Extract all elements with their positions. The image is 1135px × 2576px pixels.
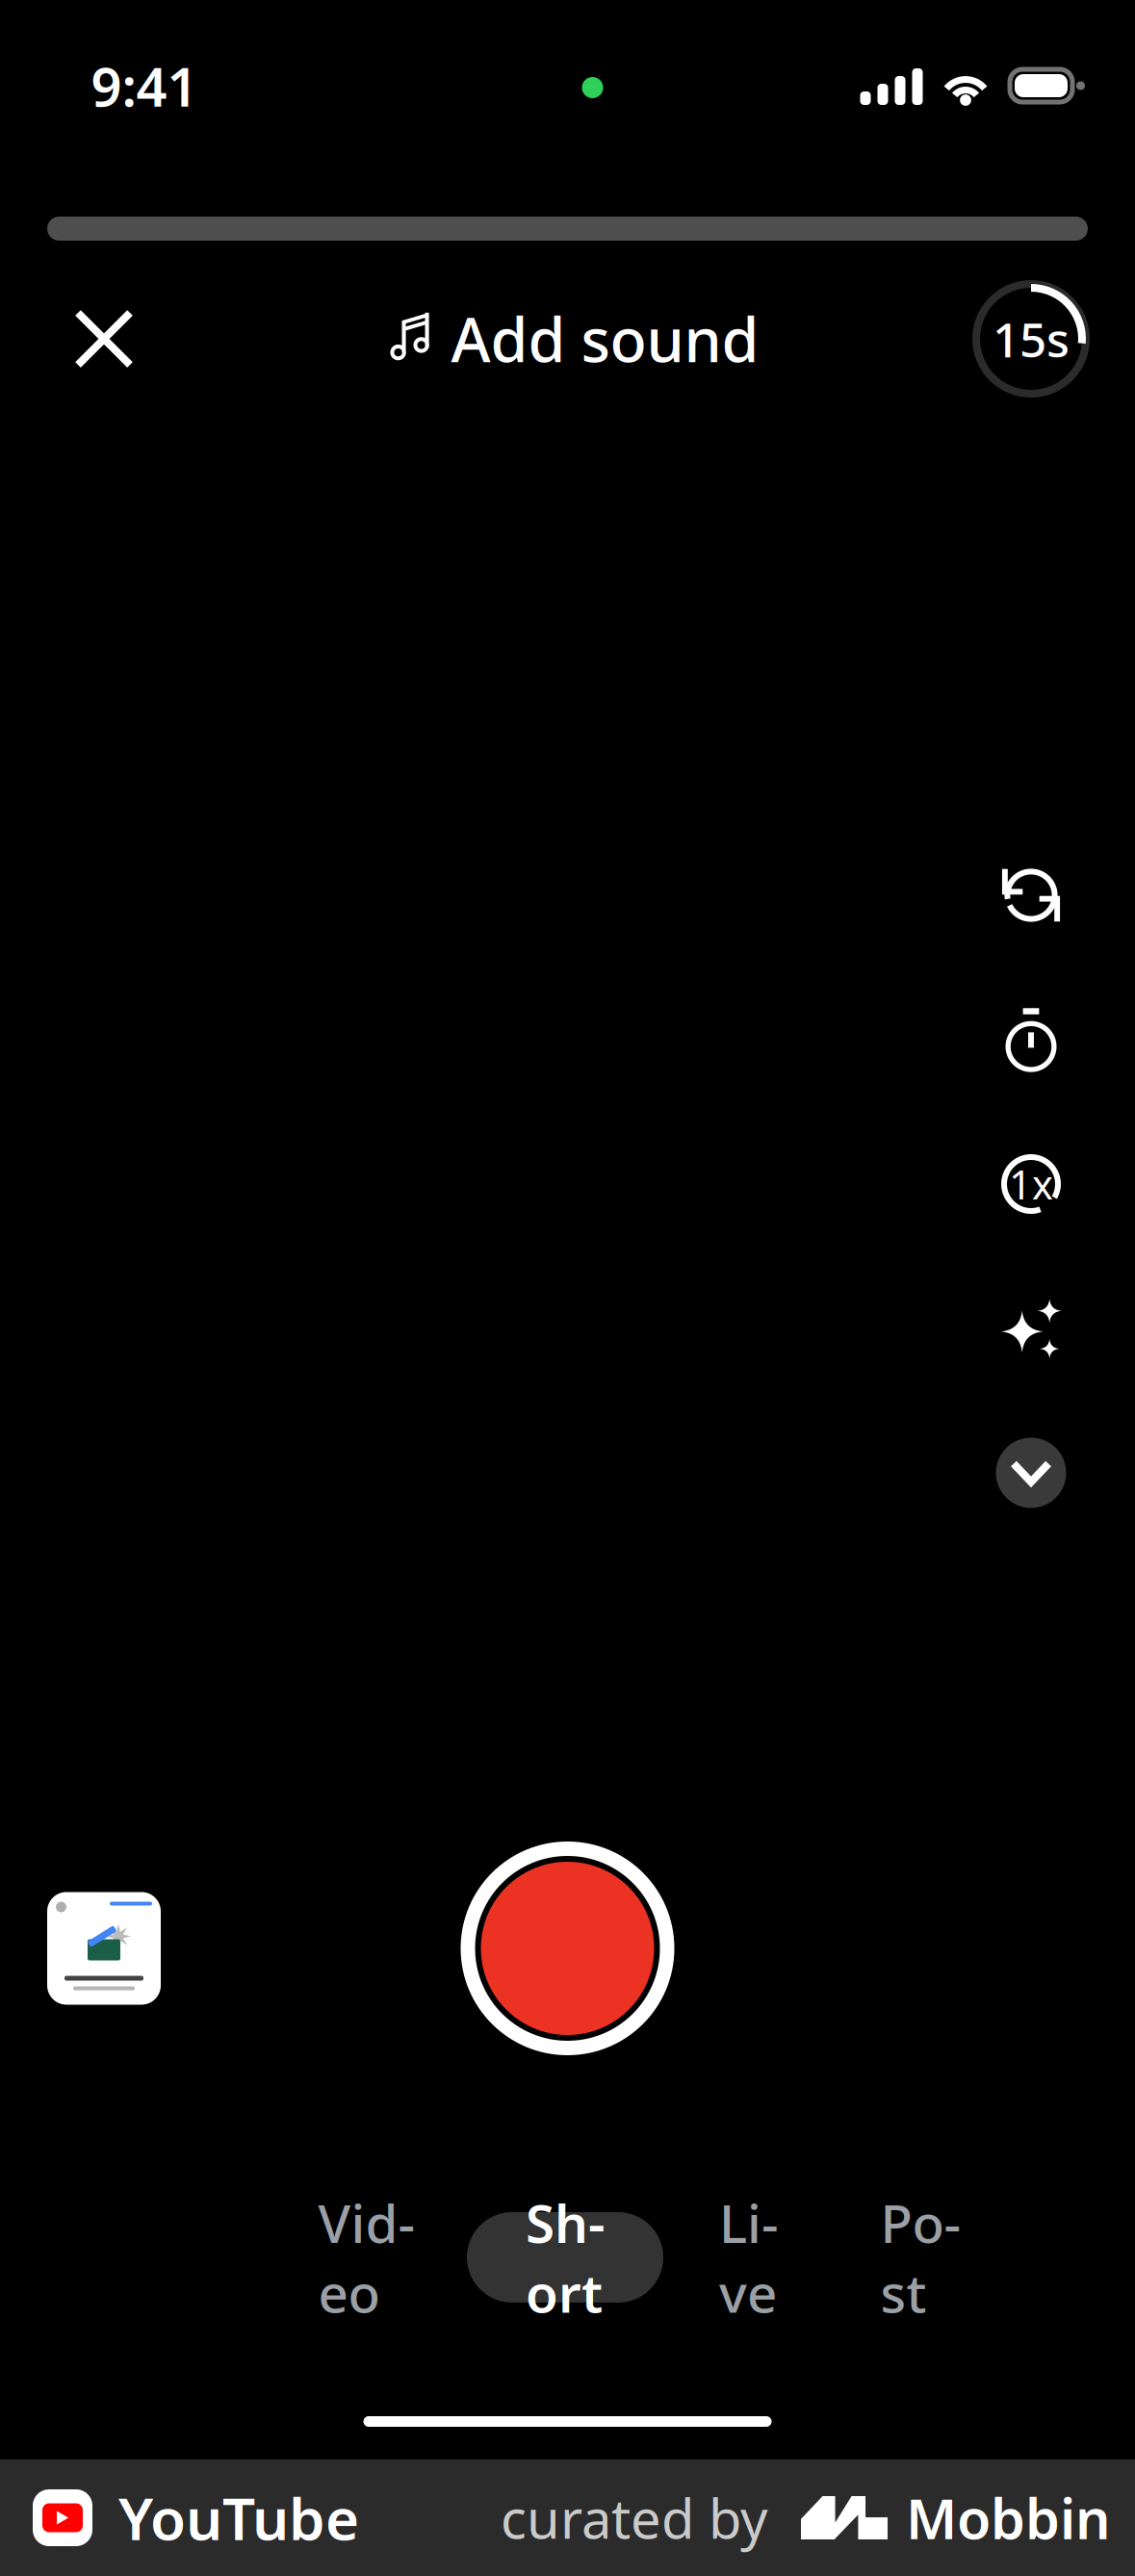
staticText: Post — [880, 2187, 961, 2327]
staticText: Short — [526, 2187, 605, 2327]
staticText: Add sound — [451, 299, 759, 379]
staticText: YouTube — [118, 2479, 359, 2556]
button[interactable]: Open gallery — [47, 1892, 161, 2005]
staticText: 15s — [993, 307, 1070, 370]
button[interactable]: Video — [289, 2212, 467, 2303]
button[interactable]: Short — [467, 2212, 663, 2303]
button[interactable]: Add sound — [364, 278, 771, 400]
staticText: 1x — [1009, 1158, 1053, 1211]
button[interactable]: Recording length, 15 seconds — [968, 276, 1094, 401]
button[interactable]: Hide controls — [977, 1401, 1085, 1545]
staticText: Mobbin — [906, 2481, 1111, 2554]
button[interactable]: Flip camera — [977, 823, 1085, 967]
staticText: 9:41 — [91, 50, 198, 121]
button[interactable]: Playback speed, 1x — [977, 1112, 1085, 1256]
button[interactable]: Record — [453, 1834, 682, 2063]
button[interactable]: Post — [811, 2212, 985, 2303]
button[interactable]: Timer — [977, 967, 1085, 1112]
staticText: Video — [318, 2187, 415, 2327]
button[interactable]: Effects — [977, 1256, 1085, 1401]
staticText: curated by — [501, 2482, 768, 2554]
button[interactable]: Close — [41, 276, 167, 401]
button[interactable]: Live — [663, 2212, 811, 2303]
staticText: Live — [719, 2187, 779, 2327]
